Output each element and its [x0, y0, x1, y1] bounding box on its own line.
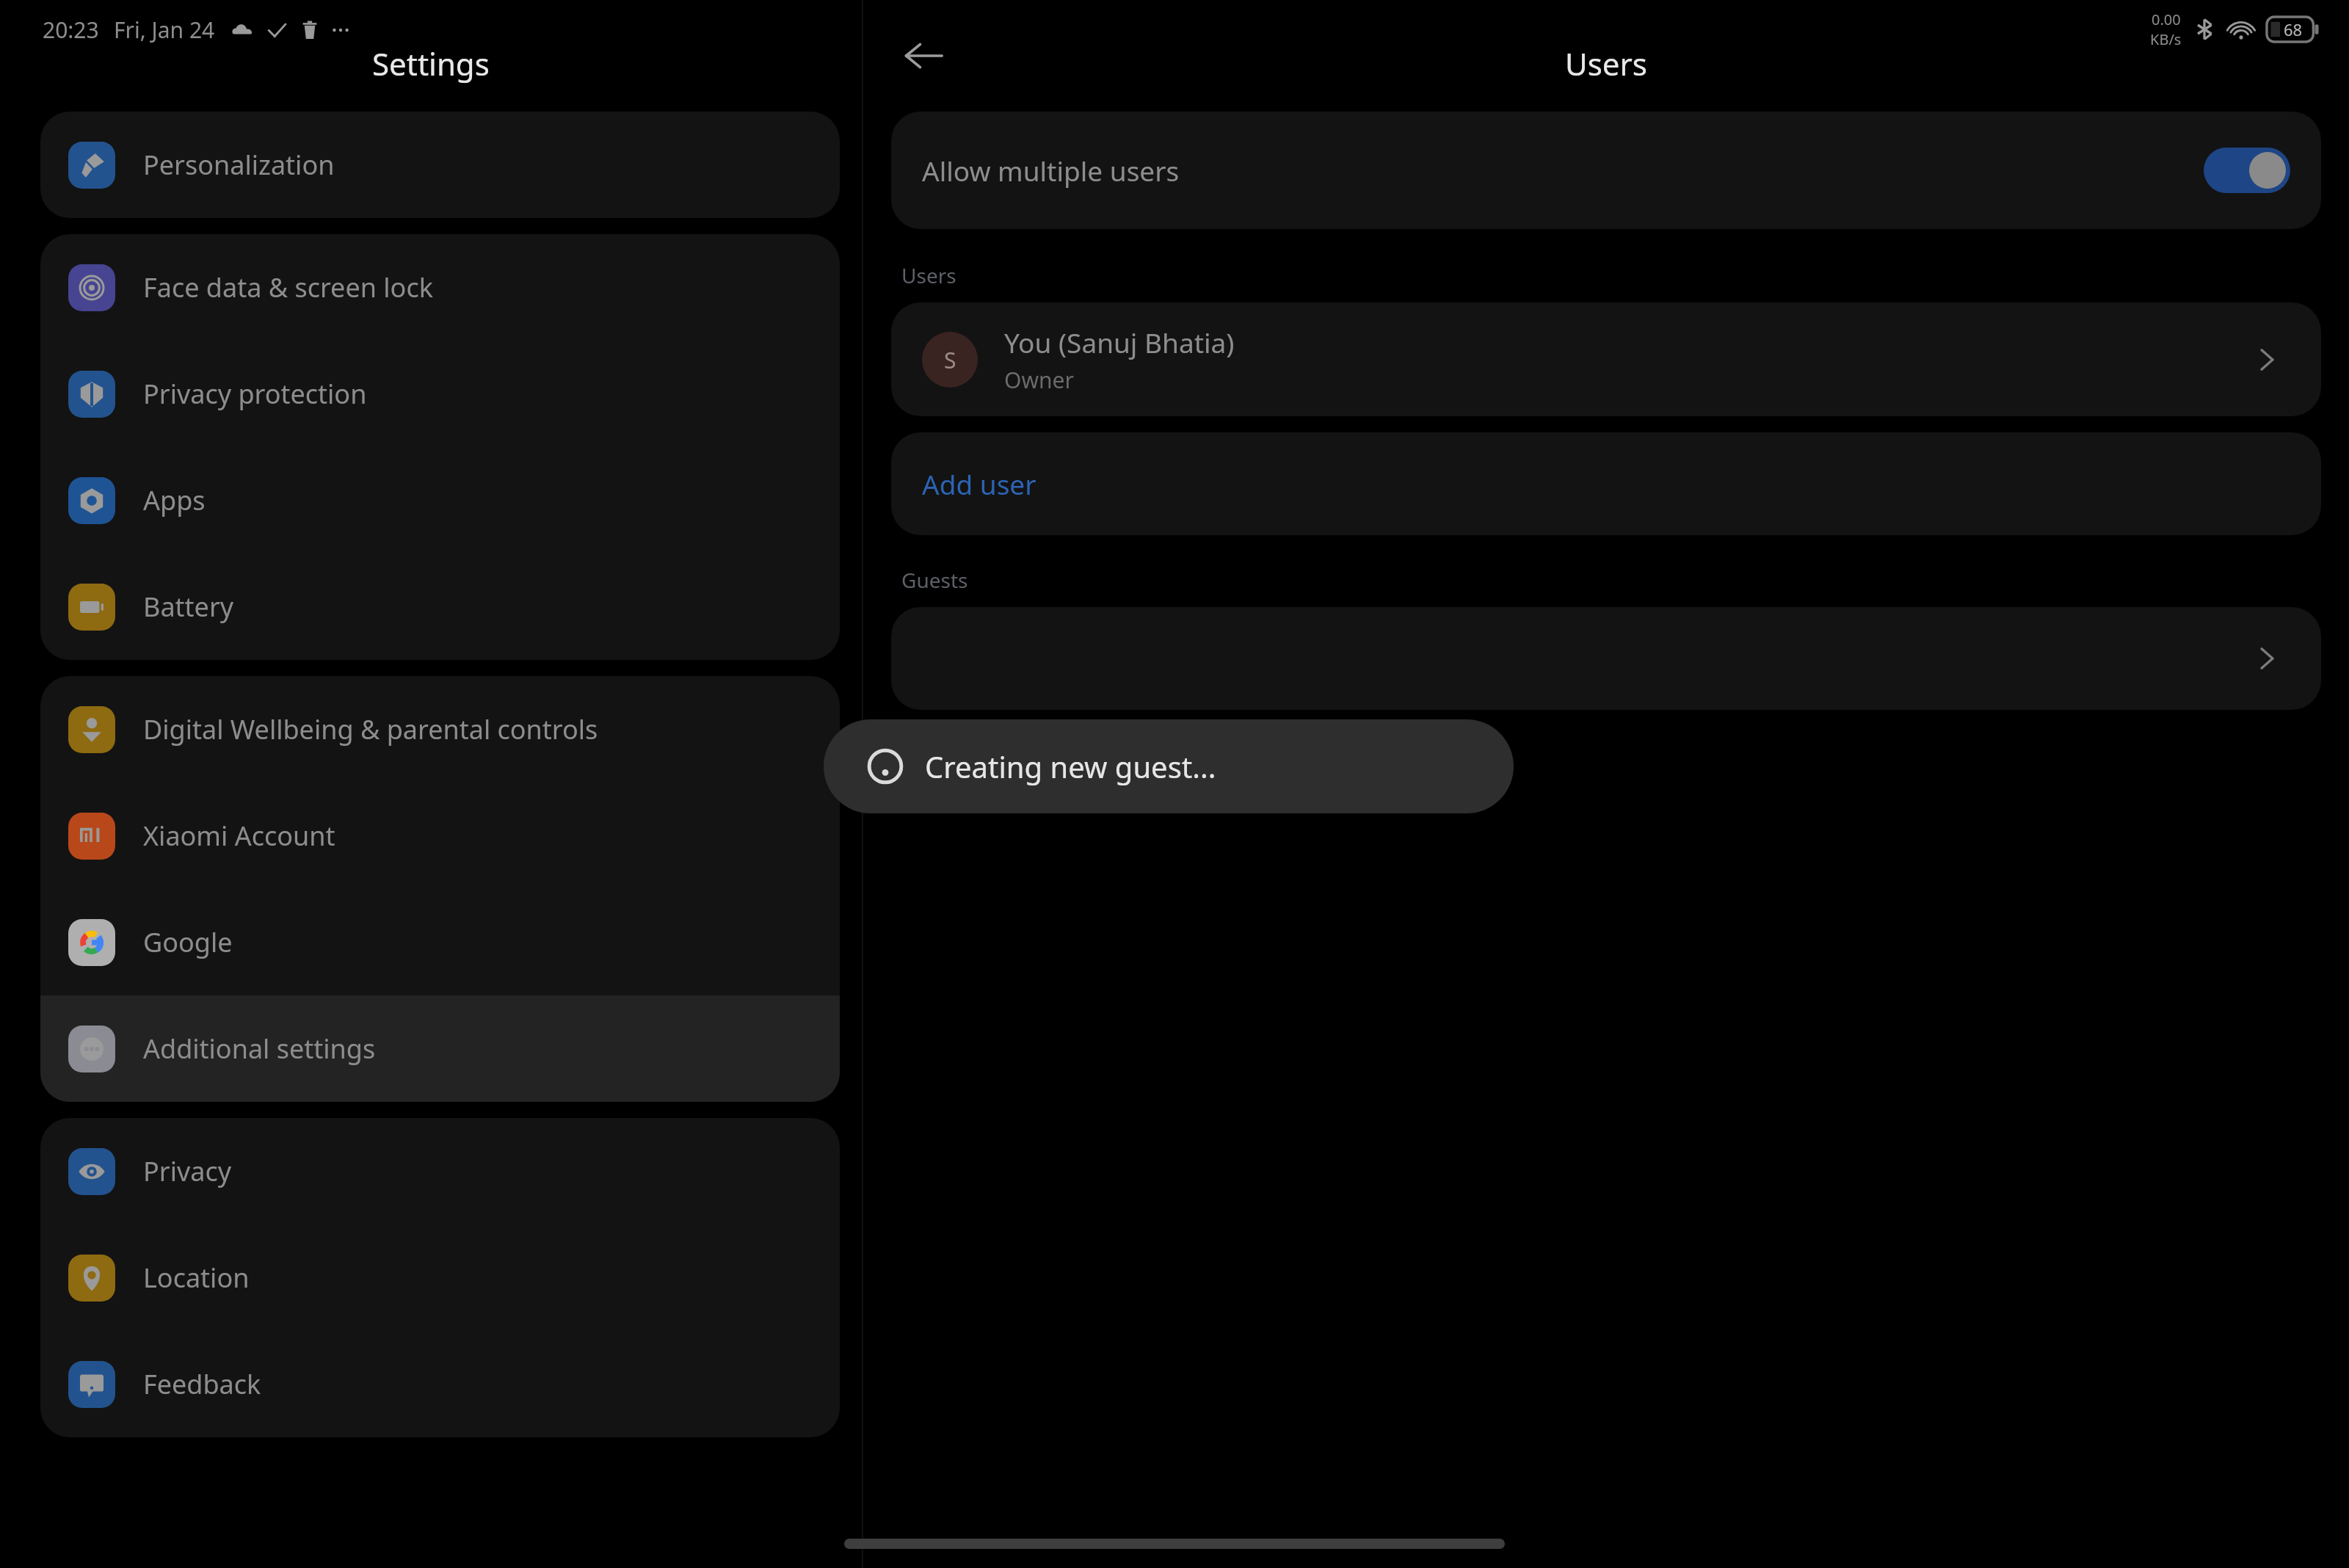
button[interactable]: Allow multiple users: [891, 112, 2321, 229]
button[interactable]: Add user: [891, 432, 2321, 535]
button[interactable]: Digital Wellbeing & parental controls: [40, 676, 840, 783]
staticText: Battery: [143, 589, 234, 625]
staticText: Allow multiple users: [922, 152, 1180, 189]
staticText: Feedback: [143, 1366, 261, 1402]
button[interactable]: Google: [40, 889, 840, 995]
button[interactable]: Back: [885, 18, 962, 94]
staticText: Xiaomi Account: [143, 818, 335, 854]
staticText: Privacy protection: [143, 376, 367, 412]
button[interactable]: Face data & screen lock: [40, 234, 840, 341]
staticText: Owner: [1004, 365, 1074, 395]
staticText: Google: [143, 924, 233, 960]
staticText: Apps: [143, 482, 206, 518]
staticText: Personalization: [143, 147, 335, 183]
staticText: Additional settings: [143, 1031, 376, 1067]
button[interactable]: Privacy protection: [40, 341, 840, 447]
button[interactable]: Feedback: [40, 1331, 840, 1437]
button[interactable]: Privacy: [40, 1118, 840, 1224]
staticText: 68: [2284, 18, 2303, 40]
staticText: Guests: [901, 566, 968, 594]
staticText: Privacy: [143, 1153, 232, 1189]
button[interactable]: Xiaomi Account: [40, 783, 840, 889]
button[interactable]: Battery: [40, 553, 840, 660]
button[interactable]: Personalization: [40, 112, 840, 218]
staticText: Users: [1565, 43, 1647, 84]
staticText: S: [944, 345, 956, 375]
button[interactable]: S: [891, 302, 2321, 416]
staticText: Users: [901, 261, 956, 289]
button[interactable]: Location: [40, 1224, 840, 1331]
staticText: Fri, Jan 24: [114, 15, 215, 45]
staticText: You (Sanuj Bhatia): [1004, 324, 1235, 360]
staticText: Location: [143, 1260, 250, 1296]
button[interactable]: [891, 607, 2321, 710]
staticText: KB/s: [2150, 29, 2182, 49]
staticText: Digital Wellbeing & parental controls: [143, 711, 598, 747]
staticText: Add user: [922, 465, 1036, 502]
staticText: Creating new guest...: [925, 747, 1216, 786]
staticText: 20:23: [43, 15, 99, 45]
staticText: Settings: [372, 43, 490, 84]
button[interactable]: Additional settings: [40, 995, 840, 1102]
staticText: Face data & screen lock: [143, 269, 433, 305]
staticText: 0.00: [2152, 10, 2181, 29]
button[interactable]: Apps: [40, 447, 840, 553]
